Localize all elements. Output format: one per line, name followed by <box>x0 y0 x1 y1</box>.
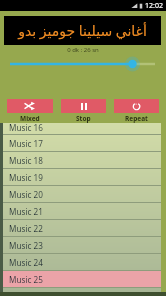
staticText: Music 16 <box>9 122 43 133</box>
button[interactable]: Mixed <box>7 99 53 123</box>
button[interactable]: Music 19 <box>0 169 161 186</box>
button[interactable]: Music 18 <box>0 152 161 169</box>
staticText: Music 19 <box>9 172 43 183</box>
staticText: Music 18 <box>9 155 43 166</box>
staticText: Music 25 <box>9 274 43 285</box>
button[interactable]: Repeat <box>114 99 159 123</box>
staticText: Music 17 <box>9 138 43 149</box>
button[interactable]: Music 17 <box>0 135 161 152</box>
button[interactable]: Music 21 <box>0 203 161 220</box>
staticText: Music 22 <box>9 223 43 234</box>
button[interactable]: Music 23 <box>0 237 161 254</box>
button[interactable]: Stop <box>61 99 106 123</box>
button[interactable]: Music 24 <box>0 254 161 271</box>
staticText: Repeat <box>125 114 148 123</box>
button[interactable]: Music 25 <box>0 271 161 288</box>
staticText: أغاني سيلينا جوميز بدو <box>18 21 147 40</box>
button[interactable]: Music 20 <box>0 186 161 203</box>
staticText: Mixed <box>20 114 40 123</box>
staticText: Stop <box>76 114 91 123</box>
button[interactable]: Seek bar <box>0 54 166 74</box>
staticText: 12:02 <box>145 1 163 11</box>
staticText: 0 dk : 26 sn <box>0 46 166 54</box>
button[interactable]: Music 16 <box>0 123 161 135</box>
staticText: Music 24 <box>9 257 43 268</box>
staticText: Music 21 <box>9 206 43 217</box>
staticText: Music 20 <box>9 189 43 200</box>
staticText: Music 23 <box>9 240 43 251</box>
button[interactable]: Music 22 <box>0 220 161 237</box>
